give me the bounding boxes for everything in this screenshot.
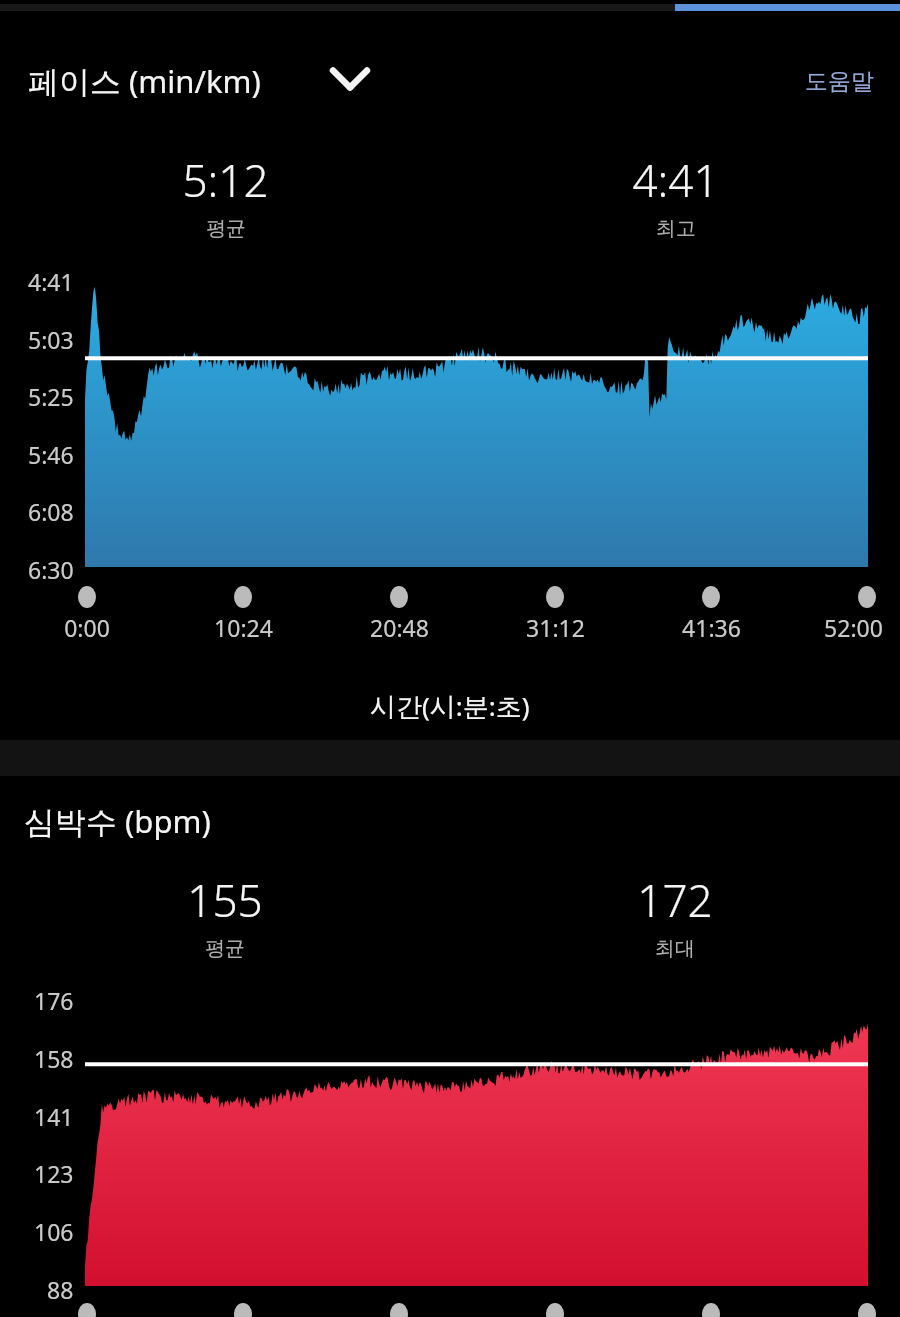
staticText: 5:46: [28, 439, 74, 470]
button[interactable]: 도움말: [805, 67, 874, 96]
staticText: 5:25: [28, 381, 74, 412]
staticText: 4:41: [28, 266, 74, 297]
staticText: 106: [34, 1216, 74, 1247]
staticText: 31:12: [526, 612, 585, 643]
button[interactable]: 페이스 단위 변경: [28, 57, 376, 105]
staticText: 페이스 (min/km): [28, 60, 261, 102]
staticText: 시간(시:분:초): [370, 688, 530, 724]
staticText: 176: [34, 985, 74, 1016]
button[interactable]: 심박수 (bpm): [24, 800, 211, 842]
staticText: 52:00: [824, 612, 883, 643]
staticText: 141: [34, 1101, 74, 1132]
staticText: 158: [34, 1043, 74, 1074]
staticText: 최대: [655, 936, 695, 961]
staticText: 20:48: [370, 612, 429, 643]
staticText: 최고: [656, 216, 696, 241]
staticText: 4:41: [632, 150, 719, 210]
staticText: 평균: [206, 216, 246, 241]
staticText: 155: [187, 870, 263, 930]
staticText: 6:08: [28, 496, 74, 527]
staticText: 88: [47, 1274, 74, 1305]
staticText: 41:36: [682, 612, 741, 643]
staticText: 172: [637, 870, 713, 930]
staticText: 123: [34, 1158, 74, 1189]
staticText: 도움말: [805, 67, 874, 96]
staticText: 평균: [205, 936, 245, 961]
staticText: 5:03: [28, 324, 74, 355]
staticText: 0:00: [64, 612, 110, 643]
staticText: 5:12: [182, 150, 269, 210]
staticText: 10:24: [214, 612, 273, 643]
staticText: 심박수 (bpm): [24, 800, 211, 842]
staticText: 6:30: [28, 554, 74, 585]
